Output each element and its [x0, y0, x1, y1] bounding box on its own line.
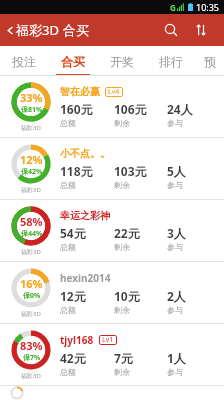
staticText: 5人	[167, 163, 186, 179]
staticText: 参与	[167, 367, 183, 377]
staticText: 福彩3D	[21, 186, 41, 194]
staticText: 福彩3D	[21, 124, 41, 132]
button[interactable]: 33%	[0, 76, 224, 138]
button[interactable]: Search	[156, 15, 186, 45]
staticText: 7元	[114, 350, 133, 366]
other: Back	[5, 25, 16, 36]
staticText: 58%	[20, 214, 43, 229]
staticText: 42元	[60, 350, 86, 366]
staticText: 10:35	[196, 1, 220, 13]
staticText: 剩余	[114, 180, 130, 190]
staticText: 开奖	[110, 54, 134, 69]
staticText: 福彩3D	[21, 372, 41, 380]
staticText: 2人	[167, 288, 186, 304]
staticText: 预	[204, 54, 216, 69]
staticText: 24人	[167, 101, 193, 117]
staticText: 保0%	[23, 291, 41, 301]
button[interactable]: 排行	[146, 46, 195, 76]
staticText: 投注	[12, 54, 36, 69]
button[interactable]: 合买	[48, 46, 97, 76]
staticText: 12元	[60, 288, 86, 304]
staticText: 剩余	[114, 367, 130, 377]
button[interactable]: 合买	[63, 22, 89, 38]
button[interactable]	[5, 386, 224, 400]
staticText: 54元	[60, 225, 86, 241]
button[interactable]: 83%	[0, 324, 224, 386]
staticText: 103元	[114, 163, 147, 179]
staticText: 排行	[159, 54, 183, 69]
staticText: 118元	[60, 163, 93, 179]
staticText: 16%	[20, 276, 43, 291]
button[interactable]: 投注	[0, 46, 48, 76]
button[interactable]: Back	[3, 21, 61, 39]
staticText: 合买	[61, 54, 85, 69]
staticText: 保44%	[21, 229, 43, 239]
staticText: 参与	[167, 180, 183, 190]
staticText: 总额	[60, 305, 76, 315]
button[interactable]: 58%	[0, 200, 224, 262]
button[interactable]: Sort	[186, 15, 216, 45]
staticText: 小不点。。	[60, 147, 110, 160]
staticText: 剩余	[114, 242, 130, 252]
staticText: hexin2014	[60, 271, 111, 285]
button[interactable]: 16%	[0, 262, 224, 324]
staticText: 剩余	[114, 305, 130, 315]
staticText: 总额	[60, 367, 76, 377]
staticText: 1人	[167, 350, 186, 366]
staticText: 83%	[20, 338, 43, 353]
button[interactable]: 开奖	[97, 46, 146, 76]
staticText: 总额	[60, 242, 76, 252]
staticText: 12%	[20, 152, 43, 167]
staticText: 22元	[114, 225, 140, 241]
staticText: 福彩3D	[21, 310, 41, 318]
staticText: Lv4	[108, 87, 120, 97]
staticText: 保81%	[21, 105, 43, 115]
staticText: Lv1	[102, 335, 114, 345]
staticText: 参与	[167, 118, 183, 128]
staticText: 106元	[114, 101, 147, 117]
staticText: 10元	[114, 288, 140, 304]
staticText: 福彩3D	[16, 21, 59, 39]
staticText: 参与	[167, 305, 183, 315]
staticText: 幸运之彩神	[60, 209, 110, 222]
staticText: 总额	[60, 118, 76, 128]
staticText: 参与	[167, 242, 183, 252]
staticText: 剩余	[114, 118, 130, 128]
staticText: 保7%	[23, 353, 41, 363]
staticText: 总额	[60, 180, 76, 190]
button[interactable]: 预	[195, 46, 224, 76]
staticText: 智在必赢	[60, 85, 100, 98]
staticText: G	[170, 2, 176, 13]
button[interactable]: 12%	[0, 138, 224, 200]
staticText: 160元	[60, 101, 93, 117]
staticText: tjyl168	[60, 333, 94, 347]
staticText: 福彩3D	[21, 248, 41, 256]
staticText: 3人	[167, 225, 186, 241]
staticText: 33%	[20, 90, 43, 105]
staticText: 保42%	[21, 167, 43, 177]
